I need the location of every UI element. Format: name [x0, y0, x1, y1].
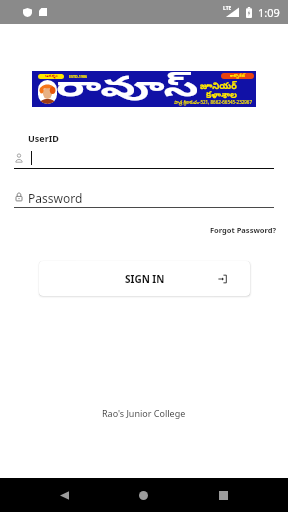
staticText: Rao's Junior College — [102, 407, 186, 419]
staticText: ESTD-1986 — [69, 74, 88, 79]
staticText: 1:09 — [258, 5, 280, 20]
staticText: LTE — [223, 5, 232, 12]
staticText: కార్పొరేట్ — [230, 74, 245, 79]
staticText: SIGN IN — [125, 272, 165, 286]
button[interactable]: Password — [0, 190, 288, 208]
button[interactable]: Recents — [203, 478, 244, 512]
button[interactable]: Forgot Password? — [202, 223, 288, 237]
staticText: Forgot Password? — [210, 225, 277, 235]
staticText: Password — [28, 190, 83, 203]
staticText: రావూస్ — [56, 72, 200, 108]
staticText: ఆదర్శం — [45, 74, 58, 79]
button[interactable]: Home — [123, 478, 164, 512]
staticText: జూనియర్ — [200, 81, 237, 93]
button[interactable] — [0, 151, 288, 169]
staticText: పాత్ర శ్రీకాకుళం-521, 8662-66545-232967 — [174, 99, 252, 106]
button[interactable]: SIGN IN — [39, 261, 250, 296]
staticText: కళాశాల — [206, 90, 237, 102]
button[interactable]: Back — [44, 478, 85, 512]
staticText: UserID — [28, 132, 59, 144]
